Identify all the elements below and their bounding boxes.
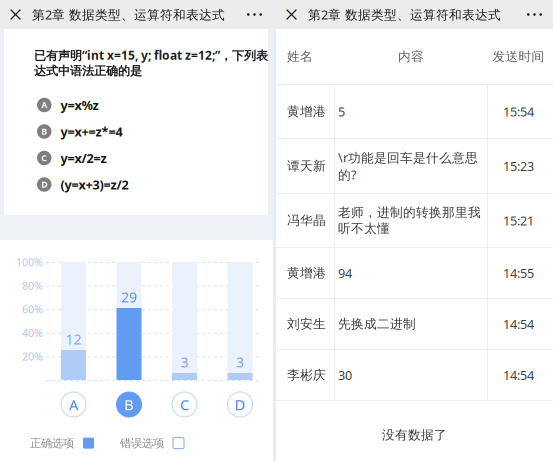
staticText: 3 bbox=[180, 352, 188, 371]
staticText: B bbox=[41, 126, 47, 137]
staticText: 内容 bbox=[398, 48, 424, 64]
staticText: 15:23 bbox=[503, 157, 534, 175]
button[interactable]: D bbox=[227, 392, 252, 417]
staticText: 已有声明“int x=15, y; float z=12;”，下列表 达式中语法… bbox=[34, 47, 268, 78]
staticText: 100% bbox=[16, 255, 43, 269]
staticText: 第2章 数据类型、运算符和表达式 bbox=[32, 6, 225, 23]
staticText: B bbox=[124, 394, 134, 414]
staticText: y=x+=z*=4 bbox=[60, 123, 122, 140]
staticText: 14:55 bbox=[503, 264, 534, 282]
staticText: D bbox=[234, 394, 245, 414]
staticText: 5 bbox=[338, 103, 345, 120]
staticText: 60% bbox=[22, 302, 43, 316]
button[interactable]: Close bbox=[281, 0, 302, 29]
staticText: 29 bbox=[121, 287, 137, 306]
staticText: C bbox=[41, 152, 47, 164]
staticText: D bbox=[41, 179, 47, 190]
staticText: 14:54 bbox=[503, 315, 534, 333]
staticText: 姓名 bbox=[287, 48, 313, 64]
staticText: 14:54 bbox=[503, 366, 534, 384]
staticText: 刘安生 bbox=[287, 316, 326, 332]
staticText: 没有数据了 bbox=[382, 427, 447, 443]
staticText: 12 bbox=[65, 329, 81, 348]
button[interactable]: More bbox=[244, 0, 265, 29]
staticText: 94 bbox=[338, 264, 352, 282]
staticText: \r功能是回车是什么意思 的? bbox=[338, 149, 478, 183]
staticText: C bbox=[180, 394, 189, 414]
button[interactable]: Close bbox=[5, 0, 26, 29]
staticText: A bbox=[69, 394, 78, 414]
staticText: 黄增港 bbox=[287, 265, 326, 281]
button[interactable]: 冯华晶 bbox=[276, 194, 553, 248]
staticText: 15:21 bbox=[503, 212, 534, 229]
staticText: (y=x+3)=z/2 bbox=[60, 176, 128, 193]
button[interactable]: A bbox=[61, 392, 86, 417]
staticText: 发送时间 bbox=[492, 48, 544, 64]
staticText: 15:54 bbox=[503, 103, 534, 120]
button[interactable]: 李彬庆 bbox=[276, 350, 553, 401]
button[interactable]: 黄增港 bbox=[276, 85, 553, 139]
staticText: 40% bbox=[22, 325, 43, 340]
staticText: y=x/2=z bbox=[60, 149, 106, 167]
staticText: 黄增港 bbox=[287, 103, 326, 119]
staticText: 20% bbox=[22, 349, 43, 364]
staticText: 先换成二进制 bbox=[338, 316, 416, 332]
button[interactable]: More bbox=[524, 0, 545, 29]
staticText: 正确选项 bbox=[30, 436, 74, 450]
button[interactable]: C bbox=[172, 392, 197, 417]
staticText: A bbox=[41, 99, 47, 111]
staticText: 谭天新 bbox=[287, 158, 326, 174]
staticText: 3 bbox=[236, 352, 244, 371]
staticText: 第2章 数据类型、运算符和表达式 bbox=[308, 6, 501, 23]
staticText: 李彬庆 bbox=[287, 367, 326, 383]
button[interactable]: 刘安生 bbox=[276, 299, 553, 350]
staticText: y=x%z bbox=[60, 96, 98, 114]
staticText: 冯华晶 bbox=[287, 212, 326, 228]
staticText: 老师，进制的转换那里我 听不太懂 bbox=[338, 204, 481, 236]
button[interactable]: B bbox=[116, 392, 141, 417]
button[interactable]: 谭天新 bbox=[276, 139, 553, 194]
staticText: 30 bbox=[338, 366, 352, 384]
staticText: 错误选项 bbox=[120, 436, 164, 450]
button[interactable]: 黄增港 bbox=[276, 248, 553, 299]
staticText: 80% bbox=[22, 278, 43, 293]
